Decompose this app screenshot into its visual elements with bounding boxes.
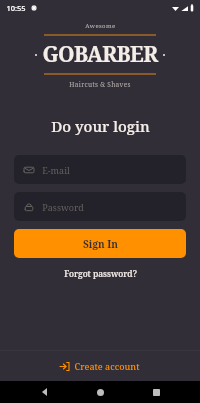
button[interactable]: E-mail bbox=[14, 155, 186, 184]
staticText: Haircuts & Shaves bbox=[69, 80, 131, 89]
button[interactable]: Password bbox=[14, 192, 186, 221]
other: Create account bbox=[60, 362, 69, 371]
staticText: Awesome bbox=[85, 22, 116, 30]
button[interactable]: Back bbox=[34, 381, 56, 403]
button[interactable]: Recent apps bbox=[145, 381, 167, 403]
staticText: Create account bbox=[74, 360, 140, 372]
button[interactable]: Home bbox=[89, 381, 111, 403]
staticText: Do your login bbox=[51, 116, 150, 136]
staticText: Forgot password? bbox=[64, 268, 137, 280]
button[interactable]: Sign In bbox=[14, 229, 186, 258]
staticText: E-mail bbox=[42, 164, 70, 176]
button[interactable]: Create account bbox=[0, 351, 200, 381]
staticText: GOBARBER bbox=[42, 40, 158, 69]
staticText: 10:55 bbox=[6, 3, 26, 13]
staticText: Password bbox=[42, 201, 84, 213]
staticText: Sign In bbox=[83, 237, 118, 251]
button[interactable]: Forgot password? bbox=[58, 265, 143, 283]
